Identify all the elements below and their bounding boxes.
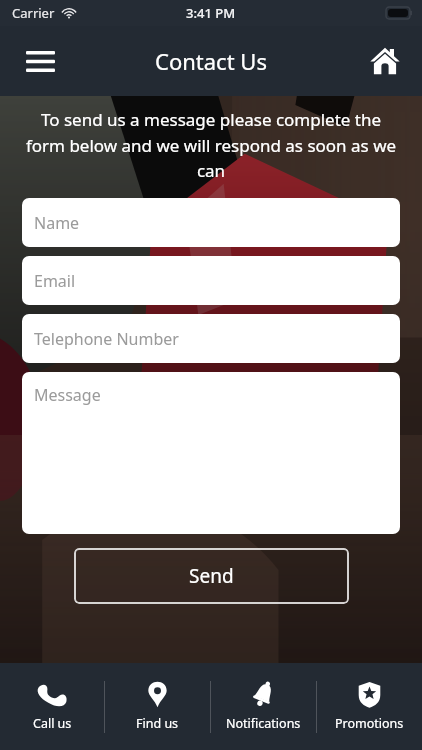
button[interactable]: Menu bbox=[16, 37, 64, 85]
button[interactable]: Send bbox=[74, 548, 349, 604]
staticText: Notifications bbox=[226, 715, 301, 732]
button[interactable]: Name bbox=[22, 198, 400, 247]
button[interactable]: Find us bbox=[105, 663, 210, 750]
button[interactable]: Home bbox=[362, 38, 408, 84]
staticText: Telephone Number bbox=[34, 328, 179, 350]
button[interactable]: Call us bbox=[0, 663, 104, 750]
staticText: Message bbox=[34, 384, 101, 406]
button[interactable]: Notifications bbox=[211, 663, 316, 750]
button[interactable]: Email bbox=[22, 256, 400, 305]
button[interactable]: Message bbox=[22, 372, 400, 534]
staticText: To send us a message please complete the… bbox=[20, 108, 402, 182]
staticText: Email bbox=[34, 270, 76, 292]
button[interactable]: Telephone Number bbox=[22, 314, 400, 363]
staticText: Promotions bbox=[335, 715, 404, 732]
staticText: Find us bbox=[136, 715, 179, 732]
staticText: Call us bbox=[33, 715, 72, 732]
staticText: 3:41 PM bbox=[186, 4, 236, 22]
staticText: Contact Us bbox=[155, 46, 267, 76]
button[interactable]: Promotions bbox=[317, 663, 422, 750]
staticText: Carrier bbox=[12, 4, 55, 22]
staticText: Name bbox=[34, 212, 80, 234]
staticText: Send bbox=[189, 563, 234, 589]
